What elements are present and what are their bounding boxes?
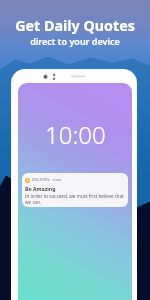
- staticText: In order to succeed, we must first belie…: [25, 193, 128, 205]
- staticText: ENLIVEN · now: [32, 177, 62, 183]
- staticText: direct to your device: [30, 35, 120, 47]
- staticText: Be Amazing: [25, 185, 56, 192]
- staticText: 10:00: [45, 118, 106, 151]
- staticText: Get Daily Quotes: [15, 16, 135, 35]
- button[interactable]: ENLIVEN · now: [22, 173, 128, 207]
